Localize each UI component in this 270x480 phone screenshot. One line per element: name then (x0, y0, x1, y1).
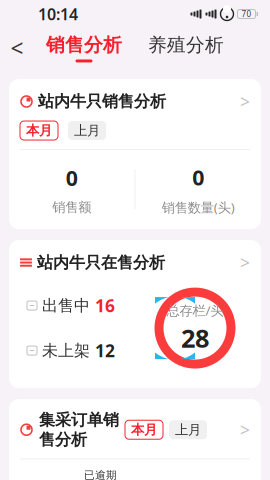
staticText: < (10, 33, 23, 63)
staticText: 站内牛只销售分析 (38, 92, 166, 111)
staticText: 销售分析 (46, 33, 122, 56)
staticText: 0 (192, 163, 204, 191)
staticText: 集采订单销售分析 (39, 410, 119, 449)
staticText: 10:14 (38, 3, 78, 25)
button[interactable]: 站内牛只销售分析 (9, 79, 261, 121)
staticText: 已逾期 (84, 469, 117, 480)
button[interactable]: 养殖分析 (148, 33, 224, 62)
staticText: 上月 (175, 421, 201, 438)
staticText: 未上架 (42, 341, 90, 360)
staticText: 16 (95, 294, 115, 317)
staticText: 本月 (131, 421, 157, 438)
staticText: 站内牛只在售分析 (37, 253, 165, 272)
button[interactable]: 上月 (68, 121, 106, 140)
staticText: > (240, 90, 250, 113)
staticText: 上月 (74, 122, 100, 139)
staticText: 养殖分析 (148, 33, 224, 56)
staticText: 12 (95, 339, 115, 362)
staticText: 70 (241, 9, 251, 19)
button[interactable]: 本月 (125, 420, 163, 439)
button[interactable]: Back (0, 31, 34, 65)
staticText: 销售数量(头) (162, 198, 235, 216)
staticText: 总存栏/头 (166, 301, 223, 319)
button[interactable]: 上月 (169, 420, 207, 439)
button[interactable]: 销售分析 (46, 33, 122, 62)
staticText: > (240, 418, 250, 441)
staticText: 销售额 (52, 199, 91, 215)
staticText: 28 (181, 321, 209, 355)
staticText: 本月 (26, 122, 52, 139)
staticText: 出售中 (42, 296, 90, 315)
button[interactable]: 站内牛只在售分析 (9, 240, 261, 278)
staticText: 0 (66, 164, 78, 192)
staticText: > (240, 251, 250, 274)
button[interactable]: 本月 (20, 121, 58, 140)
